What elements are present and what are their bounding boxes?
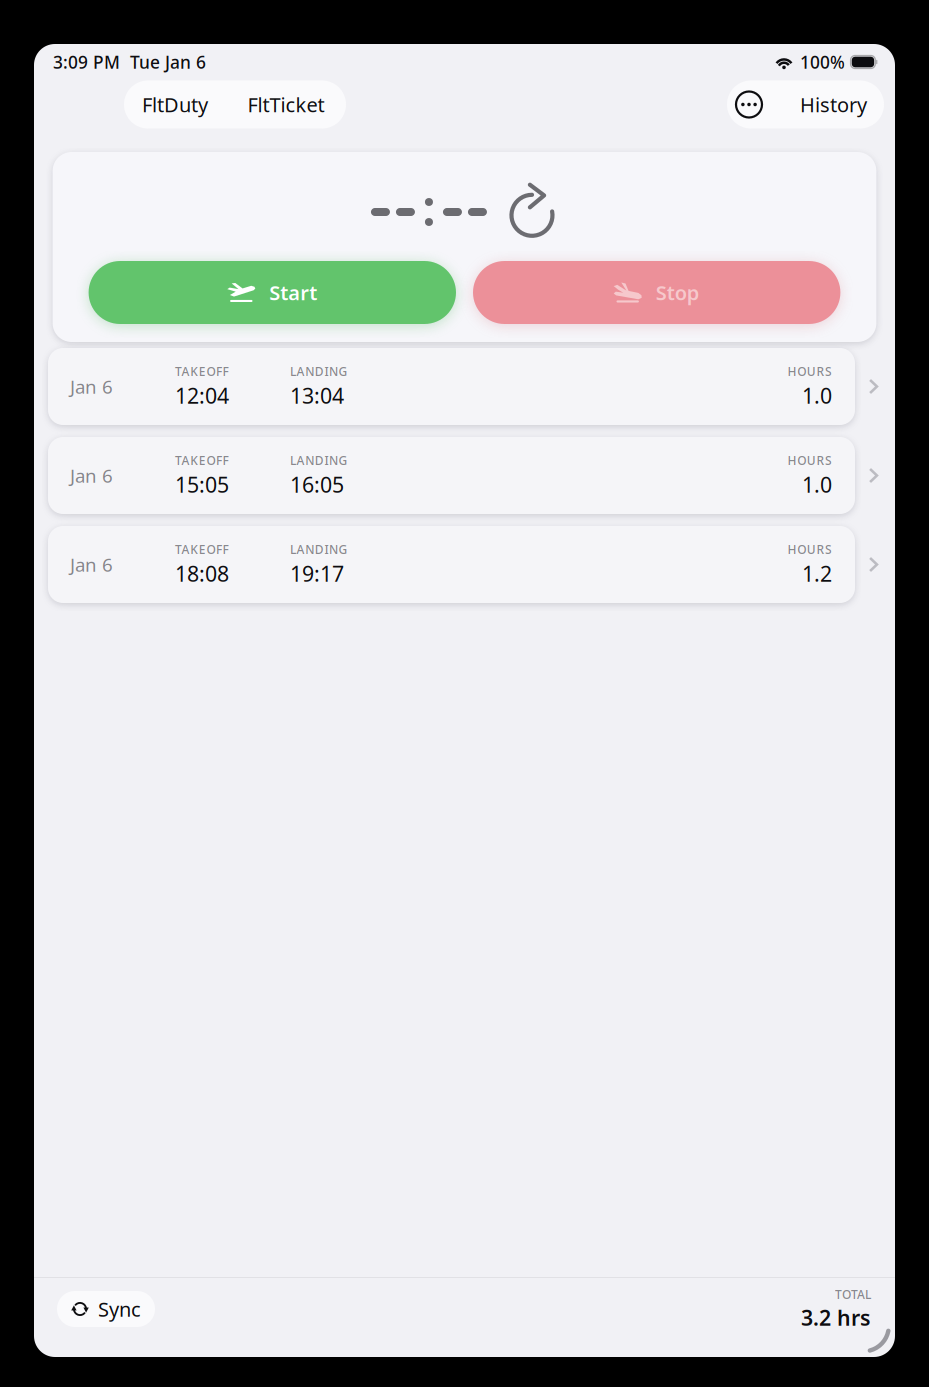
staticText: TAKEOFF	[175, 363, 229, 379]
staticText: Jan 6	[70, 552, 113, 577]
staticText: TAKEOFF	[175, 541, 229, 557]
staticText: 19:17	[290, 559, 344, 588]
staticText: 3.2 hrs	[801, 1303, 871, 1332]
staticText: Start	[269, 279, 317, 306]
button[interactable]: Jan 6	[48, 348, 855, 425]
staticText: 18:08	[175, 559, 229, 588]
button[interactable]: Start	[89, 261, 456, 324]
staticText: 16:05	[290, 470, 344, 499]
staticText: 1.0	[802, 381, 832, 410]
staticText: HOURS	[788, 452, 832, 468]
staticText: FltDuty	[142, 91, 208, 118]
staticText: Jan 6	[70, 374, 113, 399]
staticText: History	[800, 91, 867, 118]
staticText: PM	[88, 50, 120, 73]
staticText: Jan 6	[70, 463, 113, 488]
staticText: 1.2	[802, 559, 832, 588]
staticText: HOURS	[788, 541, 832, 557]
button[interactable]: History	[727, 80, 884, 128]
staticText: TOTAL	[835, 1286, 871, 1302]
button[interactable]: Jan 6	[48, 526, 855, 603]
staticText: Sync	[98, 1296, 141, 1322]
staticText: LANDING	[290, 452, 348, 468]
staticText: FltTicket	[247, 91, 324, 118]
staticText: 13:04	[290, 381, 344, 410]
staticText: Tue Jan 6	[120, 50, 206, 73]
staticText: TAKEOFF	[175, 452, 229, 468]
staticText: 15:05	[175, 470, 229, 499]
button[interactable]: FltTicket	[226, 80, 346, 128]
staticText: 12:04	[175, 381, 229, 410]
staticText: 1.0	[802, 470, 832, 499]
button[interactable]: Stop	[473, 261, 840, 324]
staticText: LANDING	[290, 541, 348, 557]
button[interactable]: Jan 6	[48, 437, 855, 514]
button[interactable]: Sync	[57, 1291, 155, 1327]
staticText: 3:09	[53, 50, 88, 73]
staticText: Stop	[656, 279, 700, 306]
staticText: 100%	[800, 50, 845, 73]
staticText: LANDING	[290, 363, 348, 379]
staticText: HOURS	[788, 363, 832, 379]
button[interactable]: FltDuty	[124, 80, 226, 128]
